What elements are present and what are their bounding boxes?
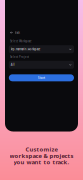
button[interactable]: Start (9, 74, 74, 81)
staticText: krp.marmarin.workspace (11, 47, 41, 51)
staticText: Start (38, 76, 45, 80)
button[interactable]: All (9, 61, 74, 69)
staticText: Select Project (10, 55, 29, 59)
staticText: All (11, 63, 15, 67)
button[interactable]: krp.marmarin.workspace (9, 45, 74, 53)
staticText: Customize (25, 145, 57, 153)
button[interactable]: Back (9, 30, 20, 36)
staticText: workspace & projects (9, 152, 73, 160)
staticText: Select Workspace (10, 39, 32, 43)
staticText: you want to track. (13, 158, 69, 166)
staticText: Back (14, 31, 19, 34)
